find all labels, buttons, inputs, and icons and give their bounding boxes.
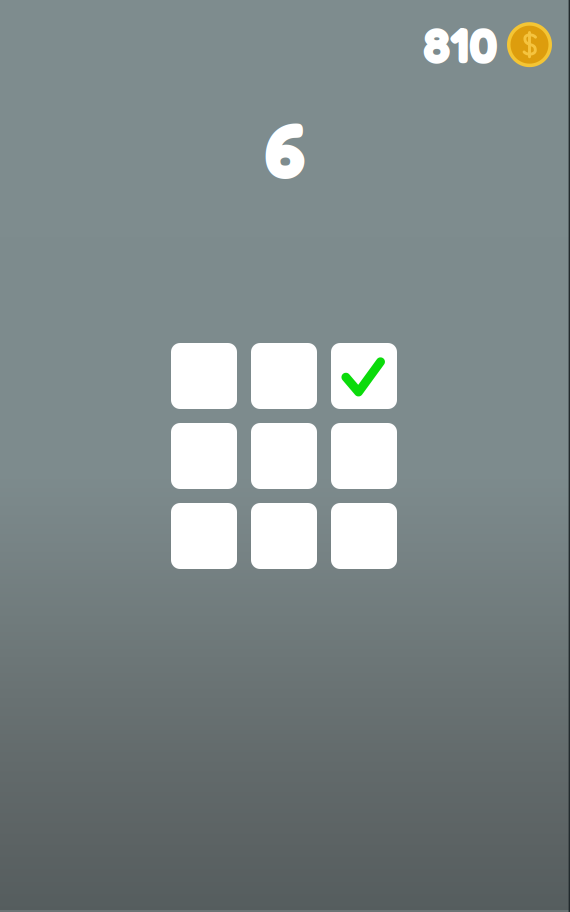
button[interactable]: Tile bbox=[171, 343, 237, 409]
button[interactable]: Tile bbox=[251, 503, 317, 569]
button[interactable]: Tile bbox=[251, 423, 317, 489]
button[interactable]: Tile bbox=[251, 343, 317, 409]
button[interactable]: Tile bbox=[331, 423, 397, 489]
staticText: 810 bbox=[423, 14, 498, 75]
button[interactable]: Tile bbox=[331, 503, 397, 569]
button[interactable]: Tile bbox=[171, 423, 237, 489]
button[interactable]: Tile bbox=[171, 503, 237, 569]
button[interactable]: 810 coins bbox=[423, 14, 552, 75]
button[interactable]: Tile, matched bbox=[331, 343, 397, 409]
staticText: 6 bbox=[264, 101, 305, 196]
